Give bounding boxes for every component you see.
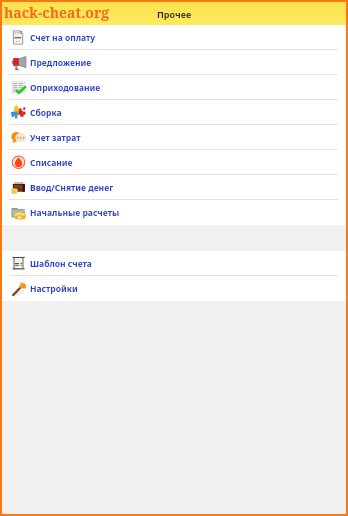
staticText: Списание bbox=[30, 157, 73, 169]
button[interactable]: Начальные расчеты bbox=[2, 200, 346, 225]
button[interactable]: Учет затрат bbox=[2, 125, 346, 150]
button[interactable]: Шаблон счета bbox=[2, 251, 346, 276]
button[interactable]: Предложение bbox=[2, 50, 346, 75]
staticText: Начальные расчеты bbox=[30, 207, 120, 219]
button[interactable]: Ввод/Снятие денег bbox=[2, 175, 346, 200]
button[interactable]: Списание bbox=[2, 150, 346, 175]
staticText: Оприходование bbox=[30, 82, 101, 94]
staticText: Предложение bbox=[30, 57, 92, 69]
staticText: Счет на оплату bbox=[30, 32, 96, 44]
staticText: Учет затрат bbox=[30, 132, 81, 144]
staticText: Ввод/Снятие денег bbox=[30, 182, 114, 194]
staticText: hack-cheat.org bbox=[4, 3, 110, 22]
button[interactable]: Сборка bbox=[2, 100, 346, 125]
staticText: Прочее bbox=[157, 8, 192, 20]
staticText: Сборка bbox=[30, 107, 62, 119]
button[interactable]: Настройки bbox=[2, 276, 346, 301]
button[interactable]: Счет на оплату bbox=[2, 25, 346, 50]
staticText: Настройки bbox=[30, 283, 78, 295]
staticText: Шаблон счета bbox=[30, 258, 92, 270]
button[interactable]: Оприходование bbox=[2, 75, 346, 100]
